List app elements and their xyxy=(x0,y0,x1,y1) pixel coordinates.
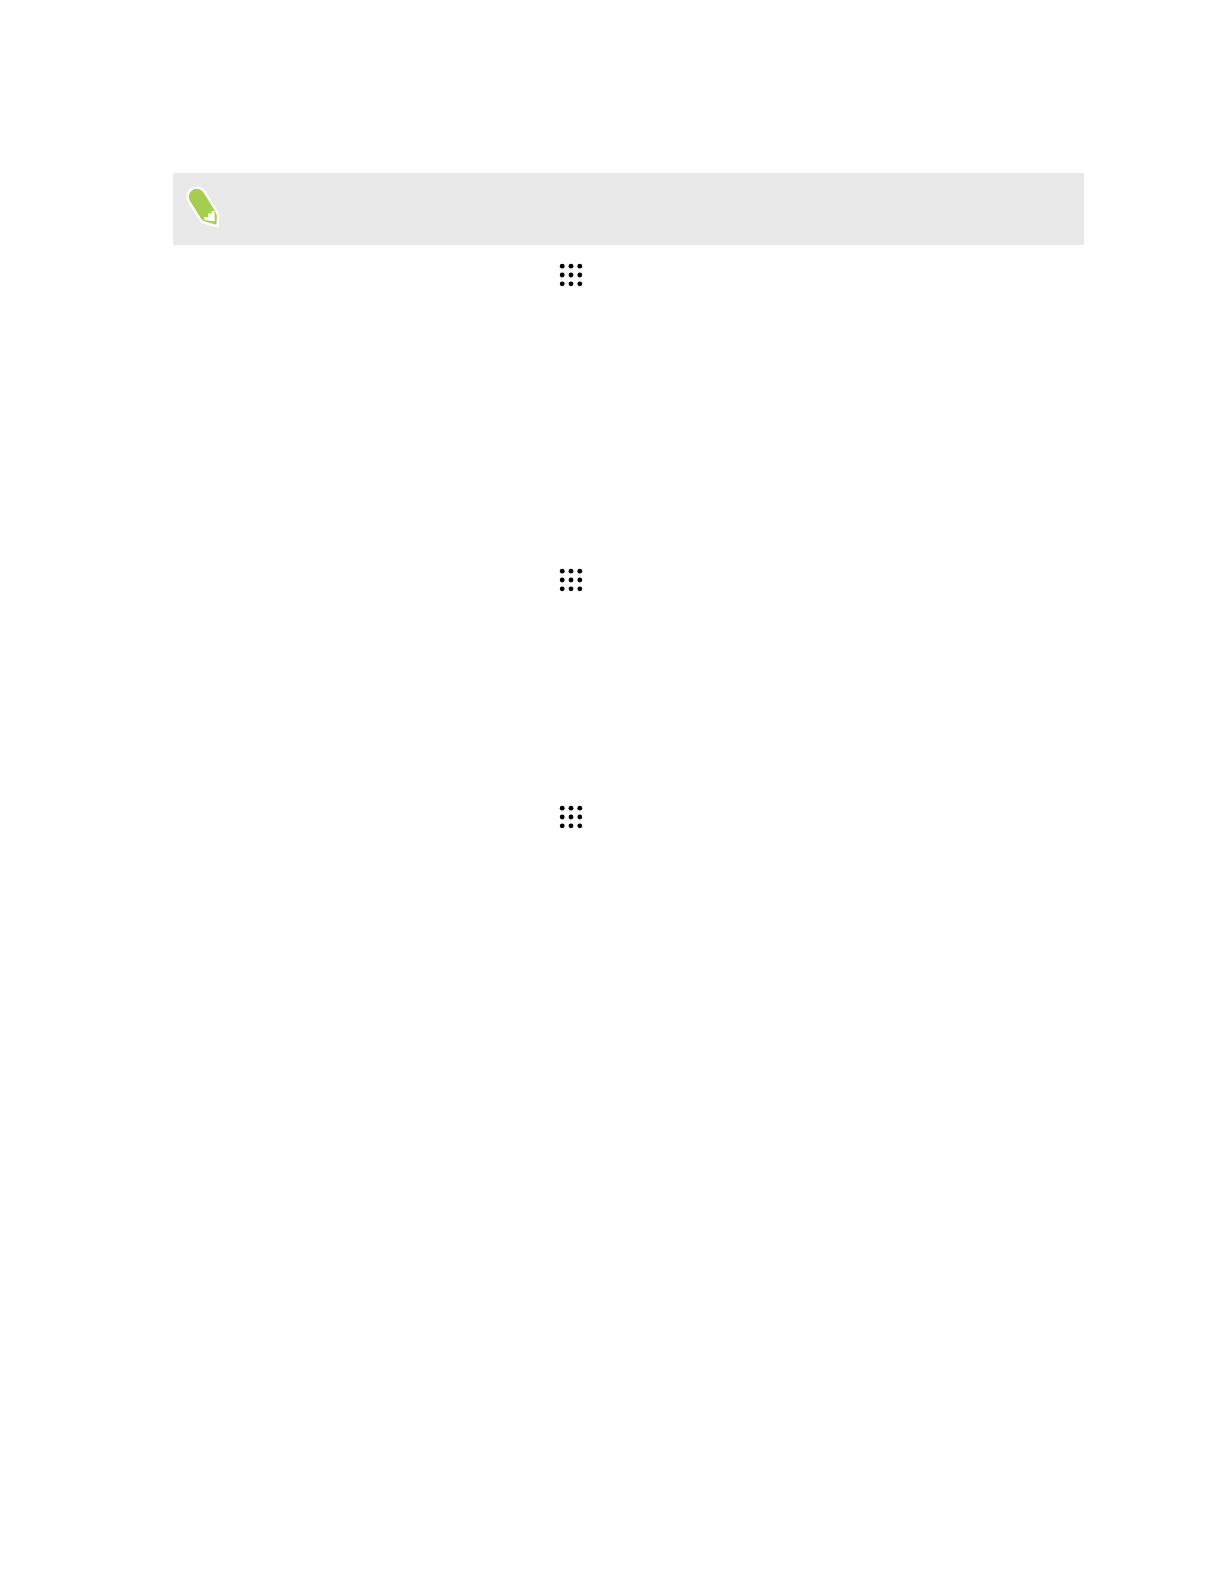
button[interactable]: Apps xyxy=(558,804,584,830)
button[interactable]: Apps xyxy=(558,262,584,288)
button[interactable]: Apps xyxy=(558,567,584,593)
button[interactable]: Evernote xyxy=(173,173,1084,245)
other: Evernote xyxy=(173,173,221,221)
